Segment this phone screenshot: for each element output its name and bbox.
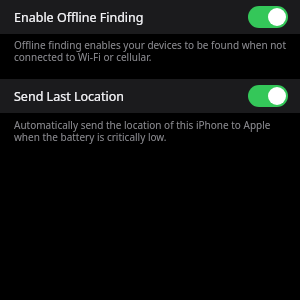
button[interactable]: Send Last Location [248, 85, 288, 107]
button[interactable]: Enable Offline Finding [248, 6, 288, 28]
staticText: Automatically send the location of this … [14, 118, 286, 144]
staticText: Enable Offline Finding [14, 9, 144, 26]
button[interactable]: Send Last Location [0, 79, 300, 113]
staticText: Send Last Location [14, 88, 125, 105]
button[interactable]: Enable Offline Finding [0, 0, 300, 34]
staticText: Offline finding enables your devices to … [14, 38, 286, 64]
